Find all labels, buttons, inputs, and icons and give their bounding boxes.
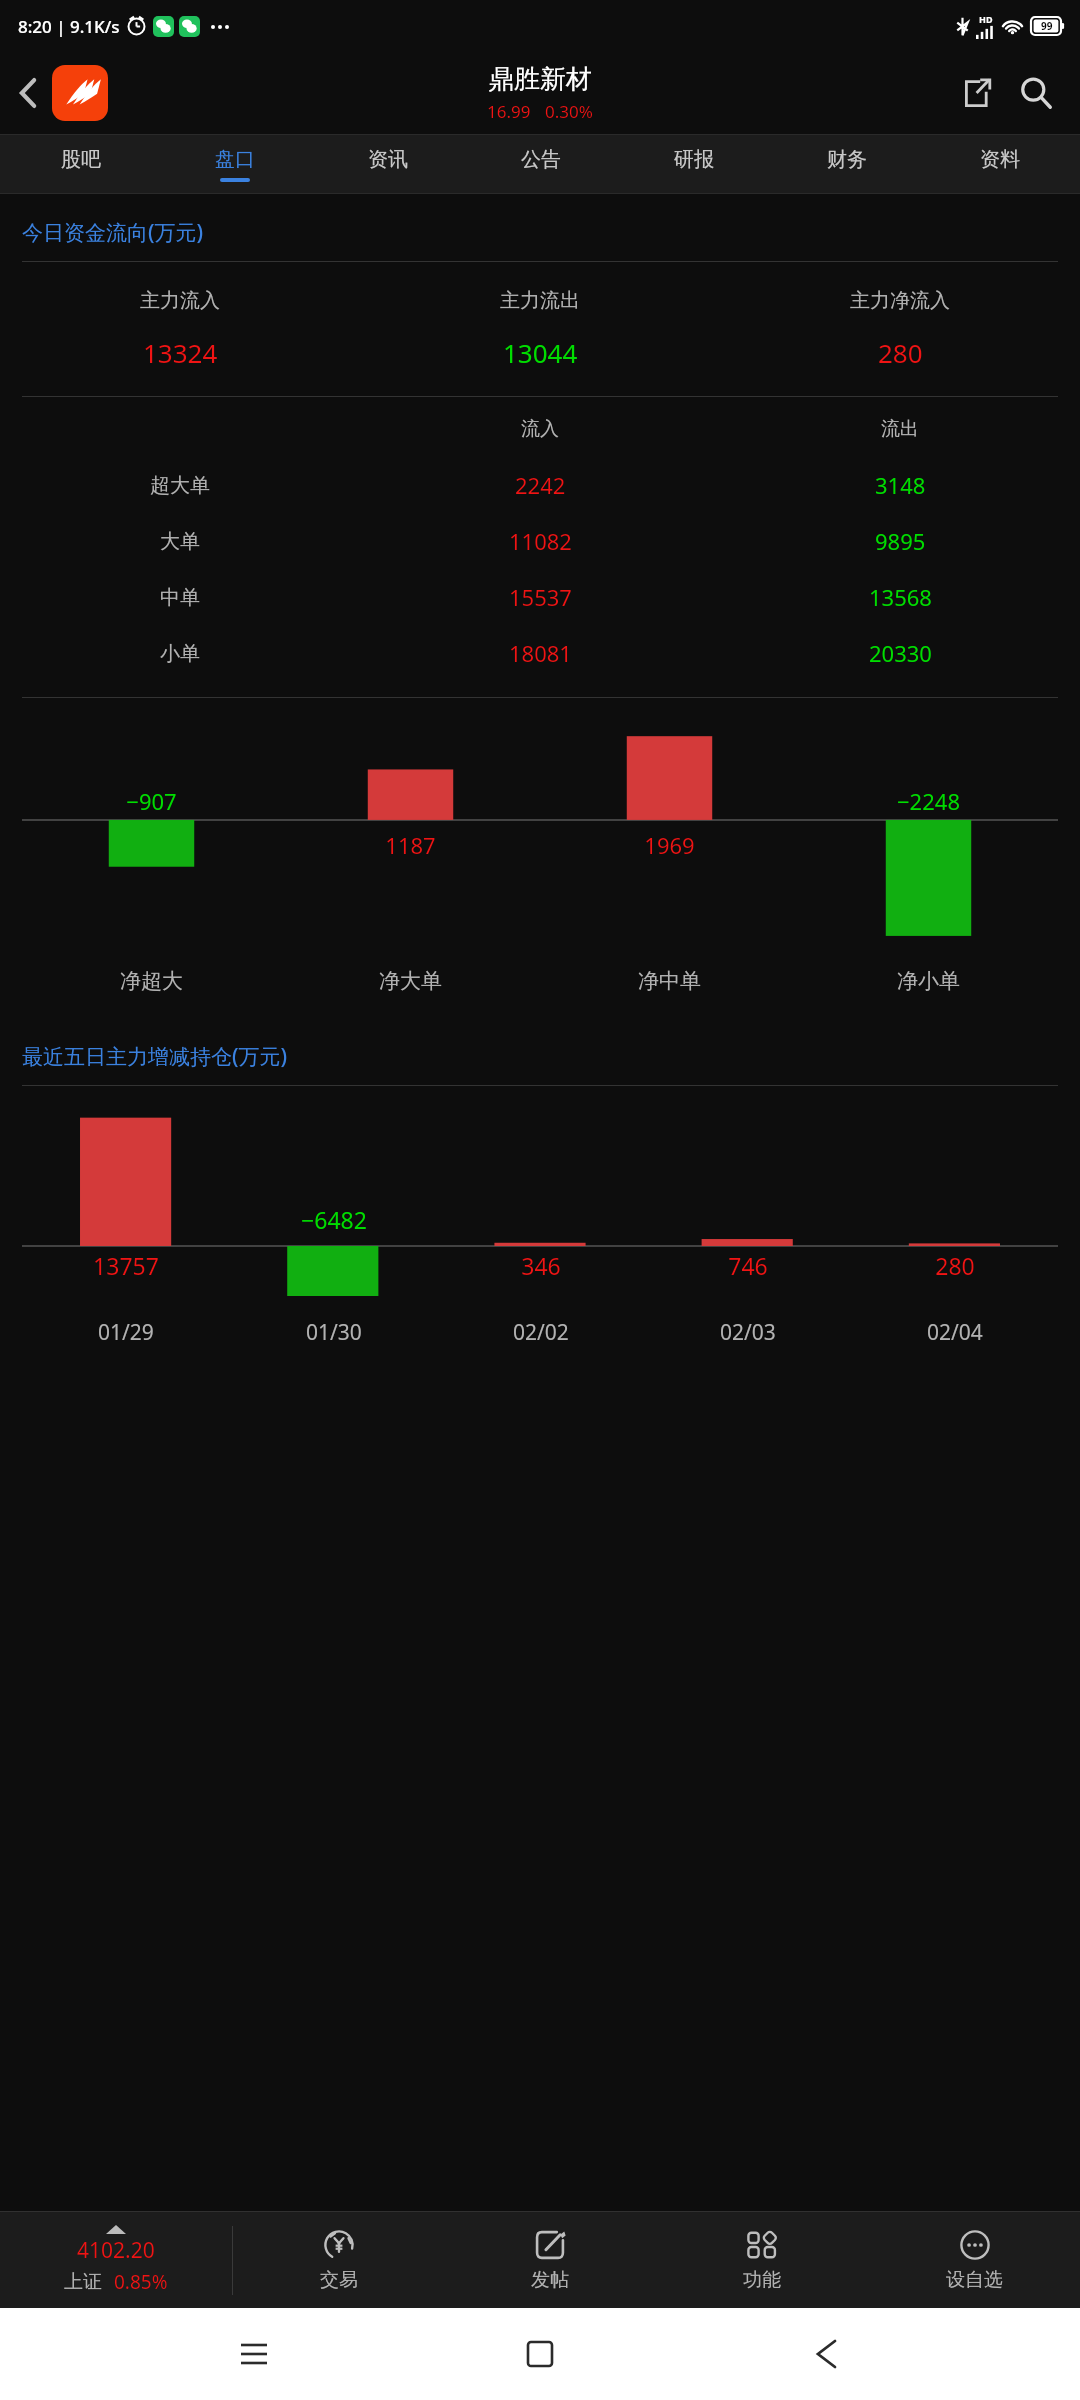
button[interactable]: 股吧: [4, 135, 158, 193]
staticText: 设自选: [946, 2268, 1003, 2292]
button[interactable]: 发帖: [444, 2212, 656, 2308]
staticText: 13044: [503, 335, 578, 370]
staticText: 净小单: [897, 968, 960, 994]
staticText: 主力流出: [500, 288, 580, 313]
button[interactable]: 功能: [656, 2212, 868, 2308]
staticText: 最近五日主力增减持仓(万元): [22, 1042, 288, 1071]
staticText: 功能: [743, 2268, 781, 2292]
staticText: 0.30%: [545, 100, 593, 123]
staticText: 01/29: [98, 1318, 154, 1347]
staticText: 02/02: [513, 1318, 569, 1347]
button[interactable]: 财务: [770, 135, 923, 193]
staticText: 746: [728, 1250, 768, 1281]
staticText: 99: [1041, 19, 1053, 33]
staticText: 3148: [875, 470, 926, 500]
staticText: 净超大: [120, 968, 183, 994]
staticText: 0.85%: [114, 2269, 168, 2295]
staticText: 财务: [827, 147, 867, 172]
staticText: 9895: [875, 526, 926, 556]
staticText: 上证: [64, 2270, 102, 2294]
staticText: 02/04: [927, 1318, 983, 1347]
staticText: 发帖: [531, 2268, 569, 2292]
staticText: 280: [935, 1250, 975, 1281]
staticText: 4102.20: [77, 2236, 155, 2265]
staticText: 中单: [160, 585, 200, 610]
staticText: 资讯: [368, 147, 408, 172]
staticText: 02/03: [720, 1318, 776, 1347]
staticText: 公告: [521, 147, 561, 172]
staticText: 流入: [521, 417, 559, 441]
staticText: 13757: [93, 1250, 159, 1281]
staticText: 今日资金流向(万元): [22, 218, 204, 247]
staticText: 8:20 | 9.1K/s: [18, 15, 120, 38]
staticText: 净中单: [638, 968, 701, 994]
staticText: 11082: [509, 526, 572, 556]
staticText: 大单: [160, 529, 200, 554]
staticText: HD: [979, 13, 993, 25]
staticText: 280: [878, 335, 923, 370]
staticText: 16.99: [487, 100, 531, 123]
staticText: 01/30: [306, 1318, 362, 1347]
staticText: 超大单: [150, 473, 210, 498]
button[interactable]: 公告: [464, 135, 617, 193]
button[interactable]: 资料: [923, 135, 1076, 193]
staticText: 主力净流入: [850, 288, 950, 313]
staticText: −907: [126, 786, 177, 816]
button[interactable]: 盘口: [158, 135, 311, 193]
staticText: 13568: [869, 582, 932, 612]
button[interactable]: 研报: [617, 135, 770, 193]
staticText: 18081: [509, 638, 572, 668]
button[interactable]: Back: [0, 52, 56, 134]
button[interactable]: Search: [1008, 65, 1064, 121]
button[interactable]: 交易: [233, 2212, 444, 2308]
staticText: 鼎胜新材: [488, 63, 592, 96]
staticText: −6482: [301, 1204, 367, 1235]
staticText: 交易: [320, 2268, 358, 2292]
button[interactable]: Recents: [222, 2322, 286, 2386]
staticText: 1187: [385, 830, 436, 860]
staticText: 资料: [980, 147, 1020, 172]
button[interactable]: Home: [508, 2322, 572, 2386]
staticText: 2242: [515, 470, 566, 500]
staticText: 346: [521, 1250, 561, 1281]
staticText: 20330: [869, 638, 932, 668]
staticText: 股吧: [61, 147, 101, 172]
staticText: 净大单: [379, 968, 442, 994]
button[interactable]: Share: [950, 67, 1002, 119]
button[interactable]: App home: [52, 65, 108, 121]
staticText: 15537: [509, 582, 572, 612]
staticText: 1969: [644, 830, 695, 860]
staticText: −2248: [897, 786, 960, 816]
button[interactable]: 4102.20: [0, 2212, 232, 2308]
staticText: 流出: [881, 417, 919, 441]
staticText: 小单: [160, 641, 200, 666]
button[interactable]: Back: [794, 2322, 858, 2386]
button[interactable]: 设自选: [868, 2212, 1080, 2308]
staticText: 盘口: [215, 147, 255, 172]
staticText: 主力流入: [140, 288, 220, 313]
staticText: 13324: [143, 335, 218, 370]
staticText: 研报: [674, 147, 714, 172]
button[interactable]: 资讯: [311, 135, 464, 193]
